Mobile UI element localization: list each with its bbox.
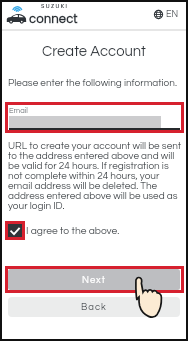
other: Tap Next [134,276,165,318]
staticText: EN [166,10,179,19]
staticText: SUZUKI [41,2,69,10]
staticText: I agree to the above. [26,226,120,237]
button[interactable]: Change language [152,6,181,23]
button[interactable]: Next [8,269,180,290]
button[interactable]: I agree to the above [5,221,25,240]
staticText: Next [82,275,106,285]
staticText: Please enter the following information. [8,78,177,88]
staticText: URL to create your account will be sent … [8,141,182,211]
button[interactable]: Back [8,297,180,317]
staticText: Email [9,107,28,115]
staticText: Back [81,302,107,312]
staticText: Create Account [42,44,146,59]
staticText: connect [29,11,78,26]
button[interactable]: Email [8,105,181,130]
